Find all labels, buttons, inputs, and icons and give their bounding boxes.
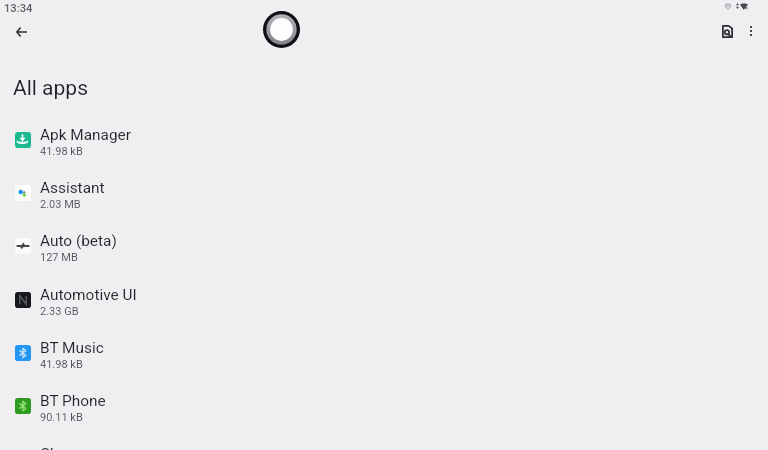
staticText: 2.03 MB (40, 198, 81, 211)
staticText: BT Music (40, 335, 104, 358)
button[interactable]: BT Phone (0, 379, 768, 432)
staticText: BT Phone (40, 388, 106, 411)
staticText: Auto (beta) (40, 228, 117, 251)
staticText: 2.33 GB (40, 305, 79, 318)
button[interactable]: Automotive UI (0, 273, 768, 326)
button[interactable]: Apk Manager (0, 113, 768, 166)
staticText: Automotive UI (40, 282, 137, 305)
button[interactable]: Back (5, 16, 37, 48)
staticText: Assistant (40, 175, 105, 198)
staticText: 90.11 kB (40, 411, 83, 424)
staticText: 127 MB (40, 251, 78, 264)
staticText: Apk Manager (40, 122, 131, 145)
staticText: 13:34 (4, 2, 33, 15)
staticText: 41.98 kB (40, 358, 83, 371)
button[interactable]: Chrome (0, 432, 768, 450)
button[interactable]: More options (735, 15, 767, 47)
staticText: Chrome (40, 441, 94, 450)
button[interactable]: Auto (beta) (0, 219, 768, 272)
staticText: All apps (13, 76, 88, 101)
button[interactable]: Assistant (0, 166, 768, 219)
button[interactable]: Search apps (711, 15, 743, 47)
staticText: 41.98 kB (40, 145, 83, 158)
button[interactable]: BT Music (0, 326, 768, 379)
